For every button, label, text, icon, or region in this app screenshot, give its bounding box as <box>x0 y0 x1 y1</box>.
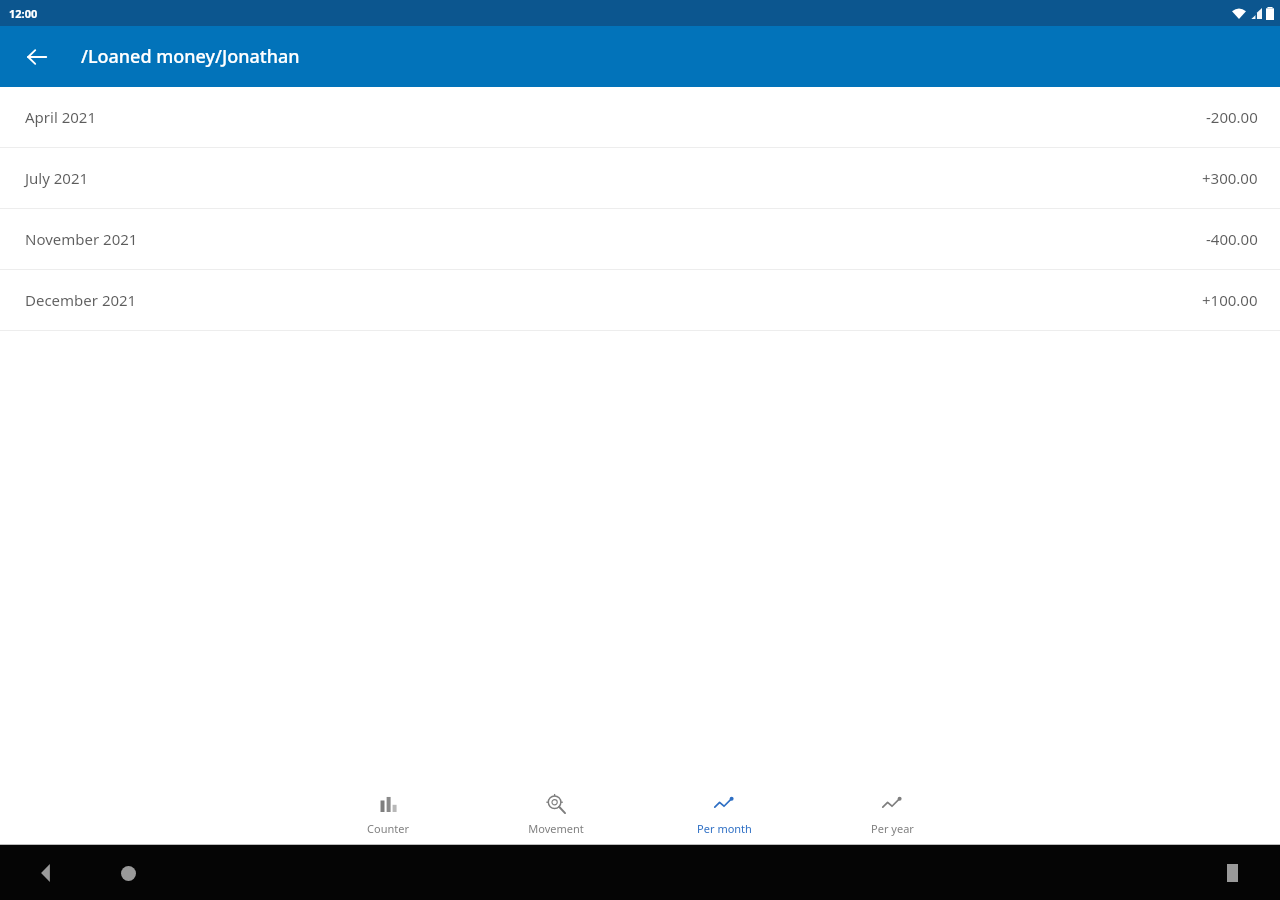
button[interactable]: Per year <box>808 783 976 844</box>
staticText: July 2021 <box>25 168 89 188</box>
staticText: November 2021 <box>25 229 138 249</box>
button[interactable]: Home <box>104 849 152 897</box>
button[interactable]: Per month <box>640 783 808 844</box>
button[interactable]: Counter <box>304 783 472 844</box>
button[interactable]: November 2021 <box>0 209 1280 269</box>
button[interactable]: April 2021 <box>0 87 1280 147</box>
staticText: December 2021 <box>25 290 137 310</box>
staticText: -400.00 <box>1206 229 1258 249</box>
staticText: April 2021 <box>25 107 96 127</box>
staticText: -200.00 <box>1206 107 1258 127</box>
staticText: Counter <box>367 821 409 836</box>
button[interactable]: Back <box>23 849 71 897</box>
staticText: /Loaned money/Jonathan <box>81 44 300 69</box>
staticText: Per month <box>697 821 752 836</box>
button[interactable]: Recent apps <box>1208 849 1256 897</box>
button[interactable]: Back <box>13 33 61 81</box>
staticText: +300.00 <box>1202 168 1258 188</box>
button[interactable]: July 2021 <box>0 148 1280 208</box>
button[interactable]: December 2021 <box>0 270 1280 330</box>
button[interactable]: Movement <box>472 783 640 844</box>
staticText: 12:00 <box>9 6 38 21</box>
staticText: +100.00 <box>1202 290 1258 310</box>
staticText: Per year <box>871 821 914 836</box>
staticText: Movement <box>528 821 584 836</box>
